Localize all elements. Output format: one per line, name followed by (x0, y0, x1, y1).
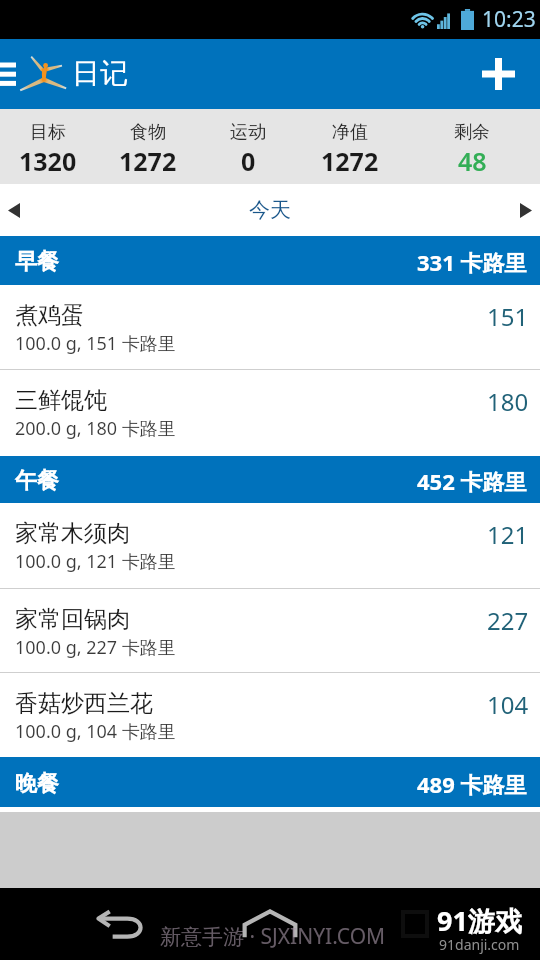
staticText: 净值 (332, 121, 368, 144)
button[interactable]: 早餐 (0, 236, 540, 285)
staticText: 1320 (19, 144, 77, 178)
staticText: 10:23 (482, 5, 536, 34)
button[interactable]: Recent apps (355, 888, 475, 960)
staticText: 运动 (230, 121, 266, 144)
button[interactable]: Add (456, 39, 540, 109)
staticText: 午餐 (15, 467, 59, 495)
staticText: 目标 (30, 121, 66, 144)
staticText: 1272 (321, 144, 379, 178)
button[interactable]: 煮鸡蛋 (0, 285, 540, 369)
button[interactable]: 午餐 (0, 456, 540, 503)
staticText: 180 (487, 385, 529, 418)
staticText: 48 (458, 144, 487, 178)
button[interactable]: 三鲜馄饨 (0, 370, 540, 456)
button[interactable]: 家常回锅肉 (0, 589, 540, 672)
staticText: 151 (487, 300, 529, 333)
staticText: 100.0 g, 104 卡路里 (15, 719, 176, 744)
button[interactable]: Next day (484, 184, 540, 236)
button[interactable]: 香菇炒西兰花 (0, 673, 540, 757)
staticText: 100.0 g, 121 卡路里 (15, 549, 176, 574)
staticText: 104 (487, 688, 529, 721)
button[interactable]: Previous day (0, 184, 56, 236)
staticText: 227 (487, 604, 529, 637)
staticText: 剩余 (454, 121, 490, 144)
staticText: 香菇炒西兰花 (15, 689, 153, 718)
button[interactable]: 家常木须肉 (0, 503, 540, 588)
staticText: 煮鸡蛋 (15, 301, 84, 330)
button[interactable]: Menu (0, 39, 22, 109)
staticText: 100.0 g, 227 卡路里 (15, 635, 176, 660)
button[interactable]: 今天 (249, 197, 291, 223)
staticText: 家常回锅肉 (15, 605, 130, 634)
staticText: 家常木须肉 (15, 519, 130, 548)
staticText: 晚餐 (15, 770, 59, 798)
button[interactable]: Back (59, 888, 179, 960)
staticText: 0 (241, 144, 256, 178)
staticText: 今天 (249, 197, 291, 223)
staticText: 200.0 g, 180 卡路里 (15, 416, 176, 441)
button[interactable]: Home (210, 888, 330, 960)
button[interactable]: 晚餐 (0, 757, 540, 807)
staticText: 331 卡路里 (417, 247, 527, 277)
staticText: 100.0 g, 151 卡路里 (15, 331, 176, 356)
staticText: 91danji.com (439, 935, 520, 954)
staticText: 452 卡路里 (417, 466, 527, 496)
staticText: 三鲜馄饨 (15, 386, 107, 415)
staticText: 食物 (130, 121, 166, 144)
staticText: 日记 (72, 56, 128, 91)
staticText: 489 卡路里 (417, 769, 527, 799)
staticText: 新意手游 · SJXINYI.COM (160, 922, 386, 951)
staticText: 121 (487, 518, 529, 551)
staticText: 1272 (119, 144, 177, 178)
staticText: 早餐 (15, 248, 59, 276)
staticText: 91游戏 (437, 902, 522, 939)
